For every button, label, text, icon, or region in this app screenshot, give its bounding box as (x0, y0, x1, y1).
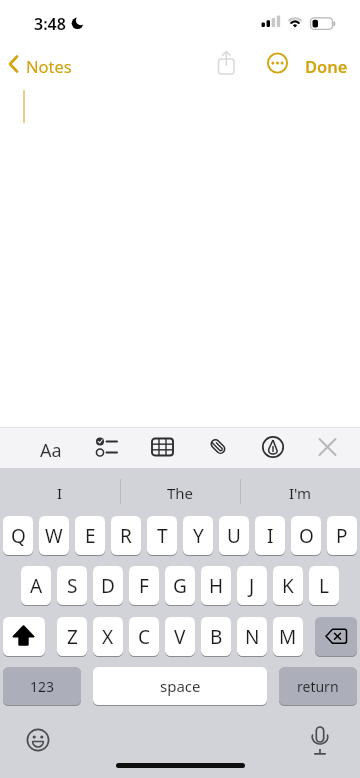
staticText: J (249, 573, 255, 599)
staticText: W (45, 523, 63, 549)
button[interactable] (91, 431, 123, 464)
button[interactable]: T (147, 516, 177, 555)
button[interactable]: Y (183, 516, 213, 555)
staticText: The (167, 483, 194, 503)
button[interactable] (260, 48, 294, 78)
button[interactable]: B (201, 617, 231, 656)
button[interactable]: space (93, 667, 267, 705)
staticText: G (173, 573, 187, 599)
button[interactable]: N (237, 617, 267, 656)
button[interactable] (300, 48, 352, 78)
button[interactable]: S (57, 566, 87, 605)
button[interactable]: 123 (3, 667, 81, 705)
staticText: Aa (40, 438, 62, 463)
staticText: Notes (26, 55, 72, 77)
button[interactable]: C (129, 617, 159, 656)
button[interactable] (305, 726, 337, 756)
staticText: V (174, 624, 186, 650)
staticText: U (227, 523, 241, 549)
button[interactable]: L (309, 566, 339, 605)
button[interactable]: W (39, 516, 69, 555)
staticText: I'm (289, 483, 312, 503)
staticText: K (282, 573, 294, 599)
staticText: M (279, 624, 297, 650)
staticText: T (157, 523, 168, 549)
button[interactable]: G (165, 566, 195, 605)
button[interactable]: M (273, 617, 303, 656)
staticText: O (299, 523, 314, 549)
button[interactable]: V (165, 617, 195, 656)
staticText: L (319, 573, 329, 599)
button[interactable]: E (75, 516, 105, 555)
button[interactable] (240, 473, 360, 510)
staticText: N (245, 624, 260, 650)
button[interactable] (315, 617, 357, 656)
staticText: E (85, 523, 96, 549)
button[interactable]: Z (57, 617, 87, 656)
button[interactable]: A (21, 566, 51, 605)
staticText: return (297, 677, 339, 696)
button[interactable]: K (273, 566, 303, 605)
staticText: F (139, 573, 149, 599)
button[interactable]: D (93, 566, 123, 605)
button[interactable] (312, 431, 344, 464)
button[interactable] (257, 431, 289, 464)
button[interactable]: P (327, 516, 357, 555)
button[interactable] (147, 431, 179, 464)
staticText: I (57, 483, 63, 503)
button[interactable]: F (129, 566, 159, 605)
button[interactable]: O (291, 516, 321, 555)
button[interactable]: H (201, 566, 231, 605)
button[interactable] (3, 617, 45, 656)
staticText: Q (11, 523, 26, 549)
staticText: S (67, 573, 78, 599)
staticText: 123 (30, 677, 55, 696)
staticText: space (160, 676, 201, 696)
button[interactable] (4, 48, 74, 78)
staticText: X (102, 624, 114, 650)
button[interactable] (35, 431, 67, 464)
staticText: R (120, 523, 132, 549)
button[interactable] (203, 431, 235, 464)
staticText: Done (305, 55, 348, 77)
staticText: 3:48 (34, 13, 66, 35)
button[interactable]: Q (3, 516, 33, 555)
staticText: H (209, 573, 224, 599)
button[interactable]: return (279, 667, 357, 705)
button[interactable]: I (255, 516, 285, 555)
staticText: C (138, 624, 151, 650)
button[interactable]: R (111, 516, 141, 555)
button[interactable]: U (219, 516, 249, 555)
button[interactable]: J (237, 566, 267, 605)
staticText: B (210, 624, 223, 650)
staticText: P (336, 523, 348, 549)
button[interactable] (120, 473, 240, 510)
staticText: A (30, 573, 43, 599)
staticText: D (101, 573, 115, 599)
staticText: Z (67, 624, 78, 650)
button[interactable] (22, 726, 54, 756)
button[interactable]: X (93, 617, 123, 656)
button[interactable] (0, 473, 120, 510)
staticText: Y (193, 523, 204, 549)
staticText: I (267, 523, 274, 549)
